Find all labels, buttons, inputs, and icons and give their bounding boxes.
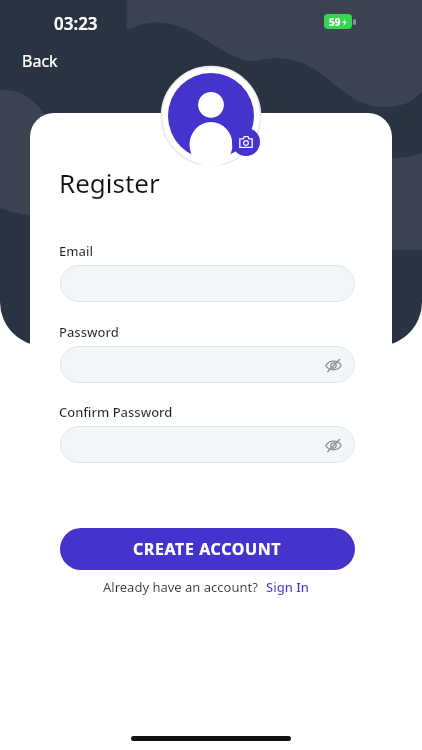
button[interactable]: Change photo bbox=[232, 128, 260, 156]
button[interactable]: Sign In bbox=[264, 578, 312, 596]
button[interactable]: Show password bbox=[60, 346, 355, 383]
button[interactable] bbox=[60, 265, 355, 302]
staticText: 59 bbox=[329, 15, 341, 29]
button[interactable]: CREATE ACCOUNT bbox=[60, 528, 355, 570]
button[interactable]: Show password bbox=[321, 353, 345, 377]
staticText: Already have an account? bbox=[103, 578, 258, 596]
staticText: Confirm Password bbox=[59, 403, 173, 421]
staticText: Register bbox=[59, 165, 160, 200]
staticText: Password bbox=[59, 323, 119, 341]
staticText: Back bbox=[22, 50, 58, 72]
button[interactable]: Back bbox=[18, 48, 62, 74]
staticText: 03:23 bbox=[54, 12, 98, 35]
staticText: Sign In bbox=[266, 578, 310, 596]
staticText: CREATE ACCOUNT bbox=[133, 538, 282, 560]
button[interactable]: Show password bbox=[321, 433, 345, 457]
button[interactable]: Show password bbox=[60, 426, 355, 463]
staticText: Email bbox=[59, 242, 94, 260]
